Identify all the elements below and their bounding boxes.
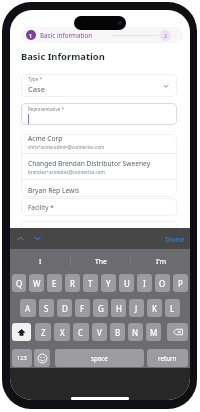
button[interactable]: Y: [101, 274, 116, 292]
button[interactable]: [12, 323, 31, 341]
button[interactable]: [167, 323, 188, 341]
staticText: return: [158, 354, 177, 362]
button[interactable]: Type *: [21, 74, 177, 97]
button[interactable]: N: [128, 323, 143, 341]
button[interactable]: I: [137, 274, 152, 292]
button[interactable]: Q: [12, 274, 26, 292]
staticText: chris+acme-admin@connectsx.com: [28, 144, 105, 150]
staticText: Case: [28, 84, 45, 94]
staticText: G: [98, 303, 104, 314]
button[interactable]: 123: [12, 349, 32, 367]
button[interactable]: D: [57, 299, 72, 317]
button[interactable]: O: [155, 274, 170, 292]
staticText: I'm: [156, 257, 166, 266]
button[interactable]: W: [29, 274, 44, 292]
button[interactable]: X: [54, 323, 70, 341]
staticText: Done: [165, 234, 185, 244]
staticText: A: [25, 303, 31, 314]
button[interactable]: Bryan Rep Lewis: [21, 186, 177, 197]
staticText: H: [116, 303, 122, 314]
button[interactable]: U: [119, 274, 134, 292]
button[interactable]: Acme Corp: [21, 134, 177, 153]
button[interactable]: H: [111, 299, 126, 317]
staticText: P: [178, 278, 183, 289]
staticText: J: [135, 303, 138, 314]
staticText: Y: [106, 278, 111, 289]
button[interactable]: R: [65, 274, 80, 292]
staticText: Basic Information: [21, 50, 105, 63]
staticText: R: [70, 278, 75, 289]
button[interactable]: J: [129, 299, 144, 317]
button[interactable]: G: [93, 299, 108, 317]
staticText: 2: [164, 32, 168, 39]
button[interactable]: 1: [21, 27, 183, 43]
staticText: D: [62, 303, 68, 314]
staticText: B: [115, 327, 121, 338]
button[interactable]: Done: [161, 231, 189, 247]
button[interactable]: space: [55, 349, 144, 367]
button[interactable]: Previous field: [13, 231, 28, 246]
staticText: E: [52, 278, 57, 289]
staticText: Basic information: [40, 31, 93, 39]
button[interactable]: P: [173, 274, 188, 292]
button[interactable]: K: [147, 299, 162, 317]
staticText: Changed Brendan Distributor Sweeney: [28, 159, 151, 168]
button[interactable]: E: [47, 274, 62, 292]
staticText: The: [95, 257, 107, 266]
button[interactable]: L: [165, 299, 180, 317]
staticText: L: [170, 303, 175, 314]
button[interactable]: M: [146, 323, 161, 341]
button[interactable]: A: [20, 299, 36, 317]
staticText: brendan+acmedist@connectsx.com: [28, 169, 105, 175]
button[interactable]: B: [110, 323, 125, 341]
button[interactable]: F: [75, 299, 90, 317]
staticText: I: [39, 257, 42, 266]
staticText: K: [152, 303, 157, 314]
staticText: N: [132, 327, 139, 338]
button[interactable]: I: [10, 249, 70, 273]
button[interactable]: The: [71, 249, 130, 273]
staticText: O: [159, 278, 166, 289]
button[interactable]: Facility *: [21, 198, 177, 216]
button[interactable]: Changed Brendan Distributor Sweeney: [21, 159, 177, 178]
button[interactable]: S: [39, 299, 54, 317]
staticText: T: [88, 278, 93, 289]
button[interactable]: C: [73, 323, 89, 341]
staticText: U: [124, 278, 130, 289]
staticText: F: [80, 303, 85, 314]
staticText: 1: [29, 32, 33, 39]
button[interactable]: return: [147, 349, 188, 367]
button[interactable]: T: [83, 274, 98, 292]
staticText: S: [44, 303, 49, 314]
staticText: space: [91, 354, 108, 362]
staticText: V: [97, 327, 102, 338]
button[interactable]: V: [92, 323, 107, 341]
staticText: Facility *: [28, 203, 54, 212]
staticText: X: [60, 327, 65, 338]
staticText: Acme Corp: [28, 134, 63, 143]
button[interactable]: [34, 349, 50, 367]
staticText: I: [143, 278, 146, 289]
staticText: Z: [41, 327, 46, 338]
staticText: 123: [17, 354, 27, 362]
staticText: M: [150, 327, 158, 338]
staticText: Bryan Rep Lewis: [28, 186, 80, 195]
staticText: W: [33, 278, 41, 289]
staticText: Q: [16, 278, 23, 289]
button[interactable]: Representative *: [21, 103, 177, 125]
staticText: Representative *: [28, 106, 65, 112]
staticText: C: [78, 327, 84, 338]
button[interactable]: Z: [35, 323, 51, 341]
button[interactable]: I'm: [131, 249, 190, 273]
button[interactable]: Next field: [30, 231, 45, 246]
staticText: Type *: [28, 76, 42, 82]
